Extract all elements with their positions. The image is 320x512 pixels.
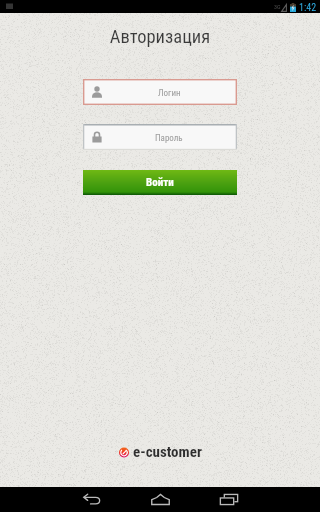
staticText: 1:42: [299, 2, 317, 14]
staticText: Войти: [146, 176, 174, 189]
staticText: Логин: [158, 88, 181, 99]
staticText: Пароль: [155, 133, 183, 144]
button[interactable]: Recent apps: [195, 487, 263, 512]
staticText: e-customer: [133, 443, 202, 461]
button[interactable]: Пароль: [83, 124, 237, 150]
button[interactable]: Back: [58, 487, 126, 512]
staticText: 3G: [274, 3, 281, 10]
button[interactable]: Логин: [83, 79, 237, 105]
staticText: Авторизация: [0, 26, 320, 48]
button[interactable]: Home: [126, 487, 194, 512]
button[interactable]: Войти: [83, 170, 237, 195]
